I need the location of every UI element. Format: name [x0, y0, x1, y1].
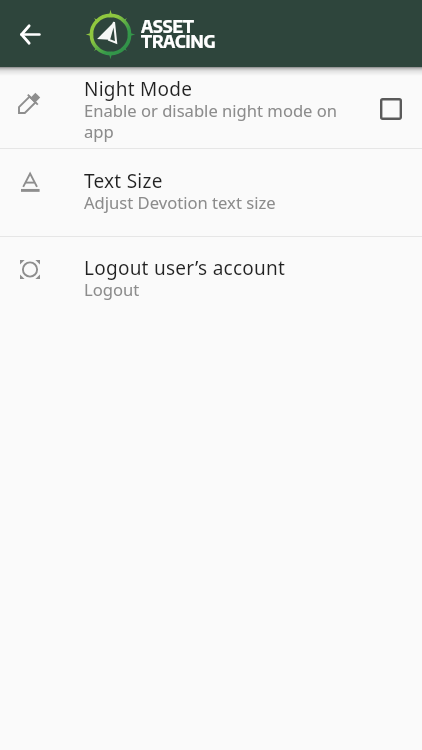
staticText: Text Size: [84, 170, 163, 193]
button[interactable]: Text Size: [0, 149, 422, 236]
button[interactable]: Night Mode: [0, 67, 422, 148]
staticText: Enable or disable night mode on app: [84, 101, 340, 143]
staticText: ASSET: [141, 14, 194, 37]
staticText: Adjust Devotion text size: [84, 193, 276, 214]
button[interactable]: Night mode checkbox: [374, 92, 408, 126]
staticText: Night Mode: [84, 78, 193, 101]
button[interactable]: Back: [0, 0, 60, 67]
button[interactable]: Logout user’s account: [0, 237, 422, 325]
staticText: Logout: [84, 280, 140, 301]
staticText: Logout user’s account: [84, 257, 286, 280]
staticText: TRACING: [141, 29, 216, 52]
